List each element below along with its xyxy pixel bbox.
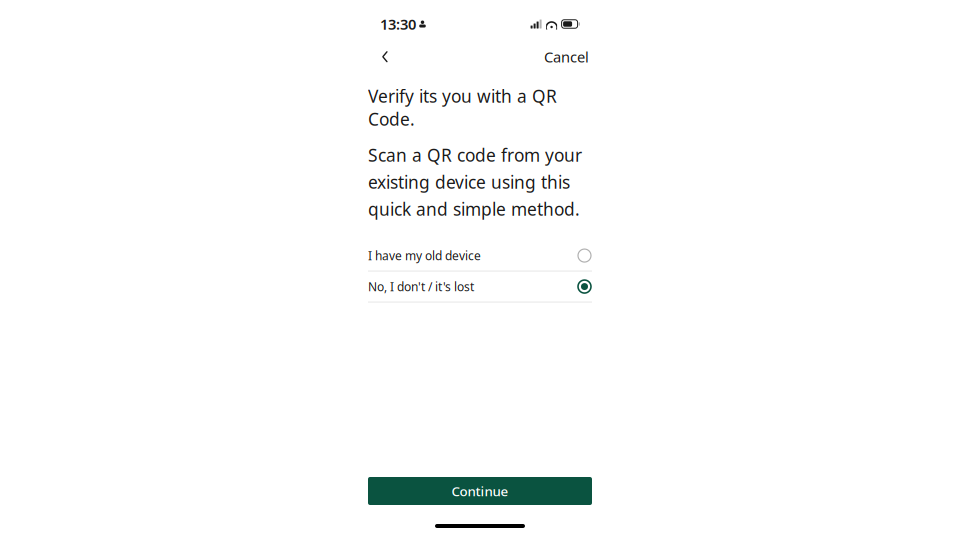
- staticText: No, I don't / it's lost: [368, 279, 474, 294]
- button[interactable]: Continue: [368, 477, 592, 505]
- button[interactable]: Cancel: [541, 41, 592, 72]
- staticText: Scan a QR code from your existing device…: [368, 143, 582, 221]
- staticText: I have my old device: [368, 248, 481, 263]
- button[interactable]: I have my old device: [368, 241, 592, 271]
- button[interactable]: No, I don't / it's lost: [368, 272, 592, 302]
- staticText: Verify its you with a QR Code.: [368, 84, 557, 130]
- staticText: Continue: [451, 482, 508, 500]
- staticText: 13:30: [380, 14, 416, 34]
- button[interactable]: Back: [372, 44, 398, 70]
- staticText: Cancel: [544, 47, 589, 66]
